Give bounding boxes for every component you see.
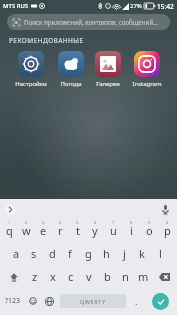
button[interactable]: Emoji xyxy=(24,290,41,312)
button[interactable]: Shift xyxy=(1,265,26,288)
button[interactable]: h xyxy=(97,242,115,265)
staticText: z xyxy=(32,269,38,284)
staticText: 8 xyxy=(130,220,133,225)
button[interactable]: 7 xyxy=(104,219,122,242)
button[interactable]: k xyxy=(133,242,151,265)
button[interactable]: 2 xyxy=(18,219,35,242)
staticText: 1 xyxy=(8,220,11,225)
staticText: d xyxy=(49,246,56,261)
staticText: t xyxy=(76,223,80,238)
staticText: h xyxy=(103,246,110,261)
staticText: k xyxy=(139,246,145,261)
staticText: g xyxy=(85,246,92,261)
staticText: 7 xyxy=(112,220,115,225)
button[interactable]: c xyxy=(62,265,80,288)
staticText: v xyxy=(86,269,92,284)
staticText: Галерея xyxy=(96,80,120,88)
button[interactable]: Погода xyxy=(56,50,86,89)
staticText: o xyxy=(146,223,153,238)
staticText: QWERTY xyxy=(80,298,106,305)
staticText: Поиск приложений, контактов, сообщений..… xyxy=(24,18,159,26)
staticText: Instagram xyxy=(132,80,162,88)
other: Search xyxy=(13,19,20,26)
staticText: j xyxy=(123,246,126,261)
button[interactable]: s xyxy=(25,242,43,265)
staticText: n xyxy=(122,269,129,284)
button[interactable]: Настройки xyxy=(13,50,49,89)
staticText: MTS RUS xyxy=(3,2,29,10)
staticText: 2 xyxy=(25,220,28,225)
button[interactable]: x xyxy=(44,265,62,288)
staticText: r xyxy=(58,223,63,238)
button[interactable]: QWERTY xyxy=(60,294,126,308)
button[interactable]: Change language xyxy=(41,290,58,312)
staticText: . xyxy=(135,295,138,307)
button[interactable]: ?123 xyxy=(2,290,24,312)
staticText: 5 xyxy=(76,220,79,225)
staticText: l xyxy=(159,246,162,261)
staticText: i xyxy=(130,223,133,238)
button[interactable]: 8 xyxy=(122,219,140,242)
button[interactable]: 1 xyxy=(1,219,18,242)
button[interactable]: 4 xyxy=(52,219,69,242)
staticText: Погода xyxy=(60,80,82,88)
button[interactable]: 3 xyxy=(35,219,52,242)
staticText: x xyxy=(50,269,56,284)
button[interactable]: Галерея xyxy=(93,50,123,89)
button[interactable]: j xyxy=(115,242,133,265)
button[interactable]: 9 xyxy=(140,219,158,242)
button[interactable]: b xyxy=(98,265,116,288)
staticText: 0 xyxy=(166,220,169,225)
button[interactable]: Instagram xyxy=(130,50,164,89)
button[interactable]: g xyxy=(79,242,97,265)
staticText: 6 xyxy=(94,220,97,225)
staticText: s xyxy=(31,246,37,261)
button[interactable]: Search xyxy=(7,14,170,30)
staticText: РЕКОМЕНДОВАННЫЕ xyxy=(9,36,84,45)
button[interactable]: a xyxy=(8,242,25,265)
staticText: 15:42 xyxy=(157,2,174,11)
button[interactable]: l xyxy=(151,242,169,265)
staticText: 9 xyxy=(148,220,151,225)
staticText: y xyxy=(92,223,98,238)
staticText: m xyxy=(138,269,149,284)
staticText: ?123 xyxy=(5,296,21,306)
staticText: f xyxy=(68,246,72,261)
button[interactable]: m xyxy=(134,265,152,288)
button[interactable]: z xyxy=(26,265,44,288)
staticText: q xyxy=(6,223,13,238)
button[interactable]: v xyxy=(80,265,98,288)
staticText: u xyxy=(110,223,117,238)
button[interactable]: d xyxy=(43,242,61,265)
staticText: w xyxy=(22,223,31,238)
staticText: 27% xyxy=(130,2,142,10)
staticText: 3 xyxy=(42,220,45,225)
staticText: b xyxy=(104,269,111,284)
button[interactable]: 6 xyxy=(86,219,104,242)
button[interactable]: Enter xyxy=(152,293,169,310)
staticText: 4 xyxy=(59,220,62,225)
staticText: e xyxy=(40,223,47,238)
button[interactable]: Voice input xyxy=(158,202,172,216)
staticText: a xyxy=(13,246,20,261)
button[interactable]: f xyxy=(61,242,79,265)
button[interactable]: Expand suggestions xyxy=(5,204,16,215)
button[interactable]: Backspace xyxy=(152,265,176,288)
staticText: c xyxy=(68,269,74,284)
staticText: p xyxy=(164,223,171,238)
button[interactable]: 5 xyxy=(69,219,86,242)
button[interactable]: n xyxy=(116,265,134,288)
button[interactable]: . xyxy=(128,290,145,312)
staticText: Настройки xyxy=(15,80,47,88)
button[interactable]: 0 xyxy=(158,219,176,242)
